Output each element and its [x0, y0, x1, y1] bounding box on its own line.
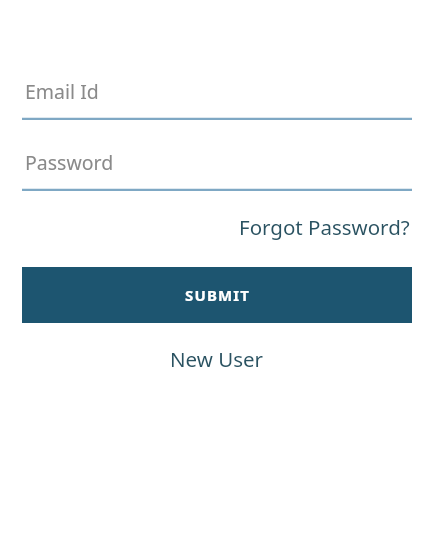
staticText: Forgot Password?	[239, 213, 410, 241]
button[interactable]: Forgot Password?	[237, 209, 412, 245]
staticText: SUBMIT	[185, 285, 250, 305]
button[interactable]: New User	[164, 341, 270, 377]
staticText: Email Id	[25, 78, 99, 105]
staticText: New User	[170, 345, 264, 373]
staticText: Password	[25, 149, 114, 176]
button[interactable]: Email Id	[22, 68, 412, 120]
button[interactable]: Password	[22, 139, 412, 191]
button[interactable]: SUBMIT	[22, 267, 412, 323]
